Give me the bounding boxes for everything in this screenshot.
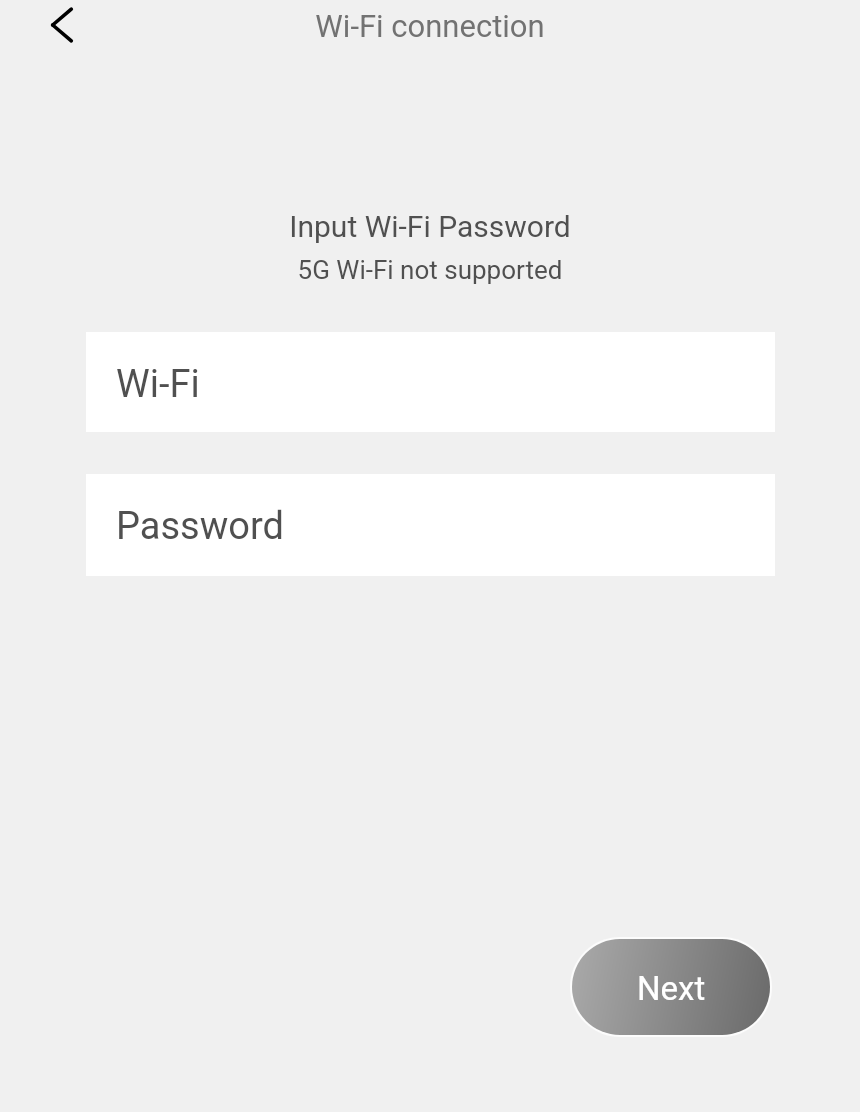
staticText: Wi-Fi connection [0, 8, 860, 44]
staticText: Password [116, 504, 284, 549]
staticText: Input Wi-Fi Password [0, 209, 860, 244]
staticText: Next [637, 969, 706, 1008]
staticText: Wi-Fi [116, 362, 200, 407]
button[interactable]: Next [570, 937, 772, 1037]
button[interactable]: Back [28, 0, 96, 59]
button[interactable]: Password [86, 474, 775, 576]
button[interactable]: Wi-Fi [86, 332, 775, 432]
staticText: 5G Wi-Fi not supported [0, 255, 860, 285]
